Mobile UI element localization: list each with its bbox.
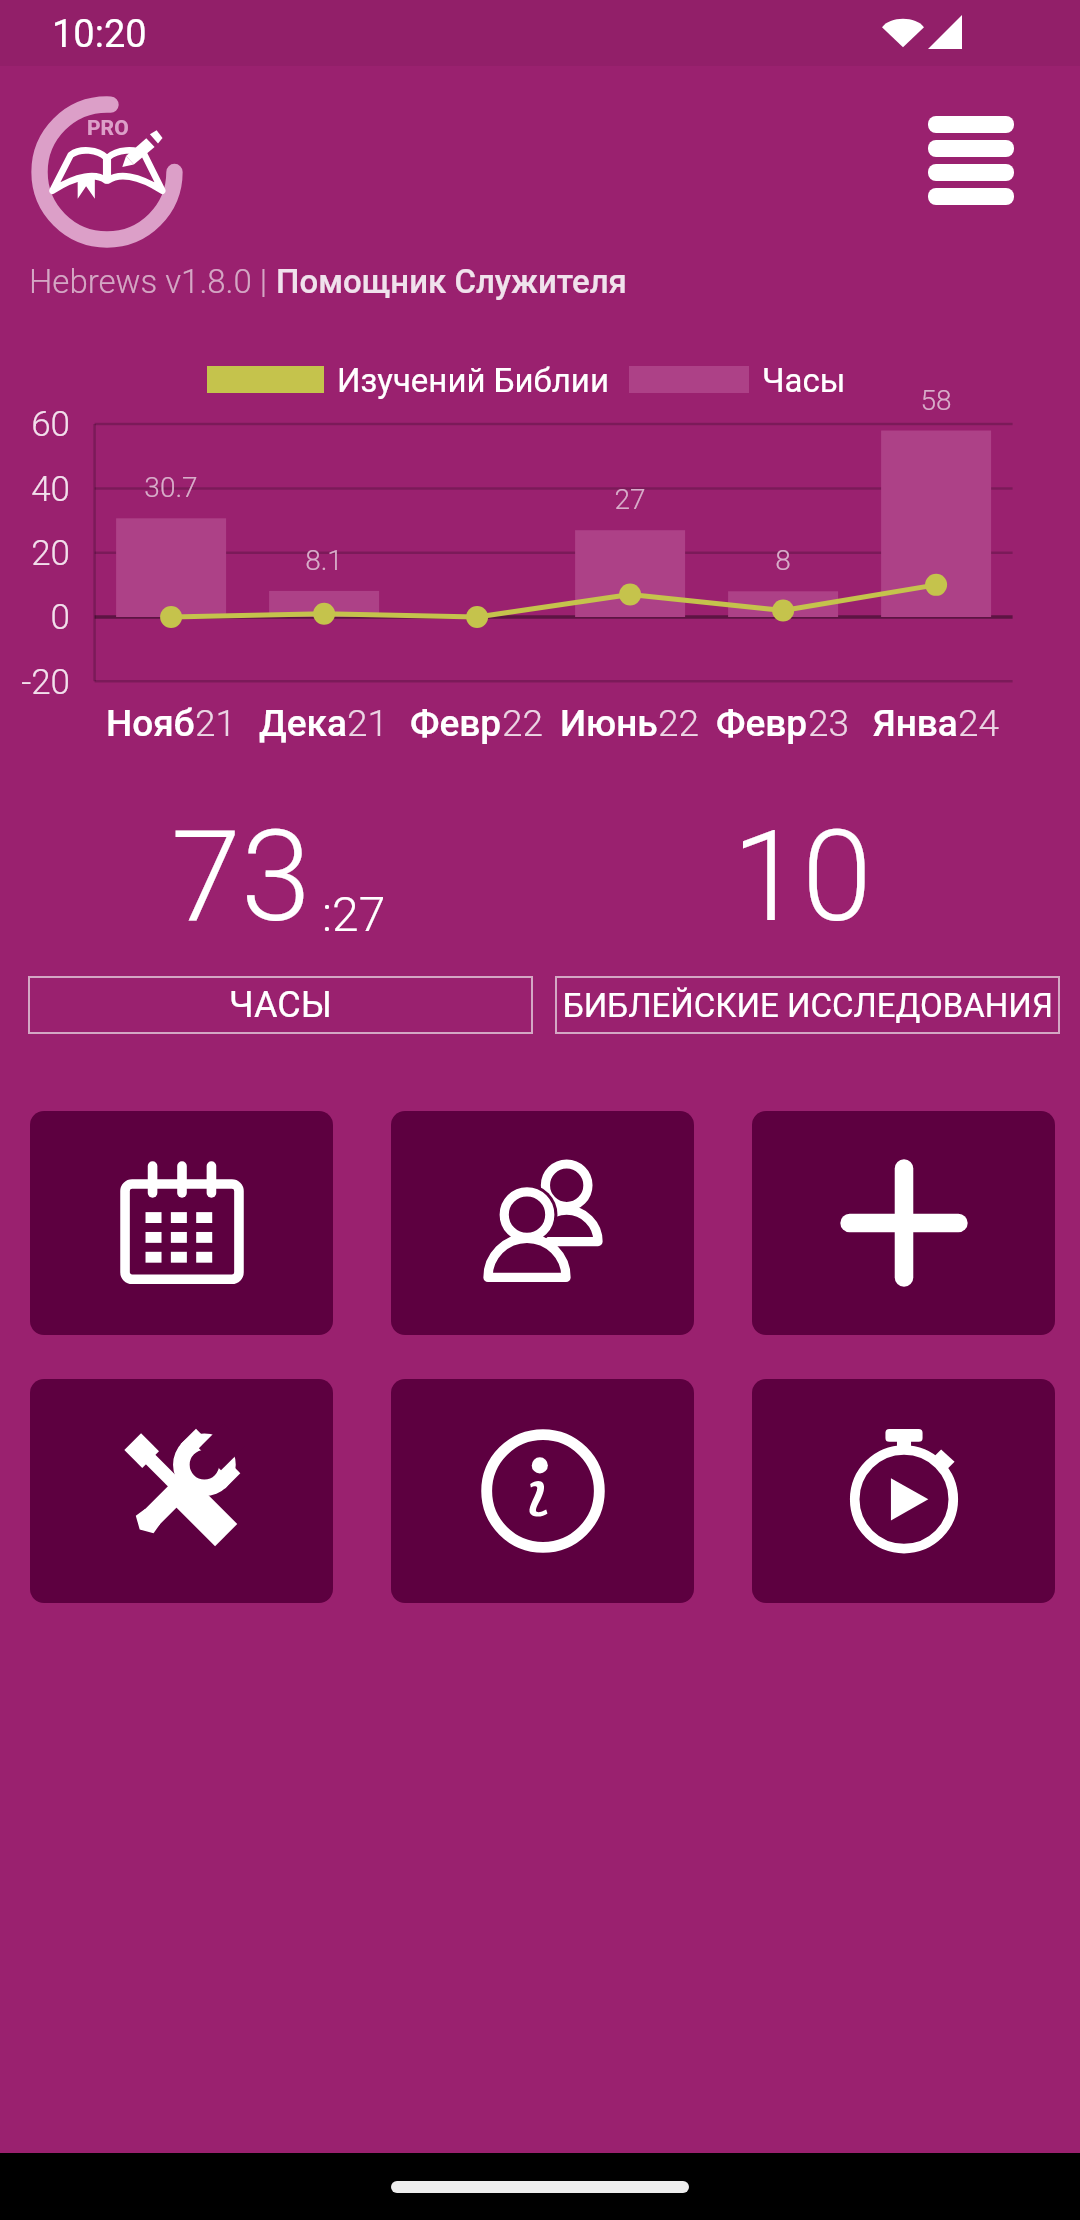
staticText: Нояб [106, 702, 195, 745]
staticText: -20 [21, 662, 70, 703]
staticText: 21 [195, 702, 237, 745]
staticText: 10 [732, 803, 872, 951]
staticText: 8.1 [305, 544, 343, 577]
staticText: ЧАСЫ [229, 984, 332, 1026]
staticText: 23 [808, 702, 850, 745]
button[interactable]: Calendar [30, 1111, 333, 1335]
button[interactable]: Timer [752, 1379, 1055, 1603]
staticText: 22 [658, 702, 700, 745]
staticText: PRO [87, 116, 129, 141]
staticText: Янва [873, 702, 958, 745]
button[interactable]: Menu [912, 98, 1030, 222]
staticText: Часы [762, 361, 846, 400]
button[interactable]: Tools [30, 1379, 333, 1603]
staticText: БИБЛЕЙСКИЕ ИССЛЕДОВАНИЯ [563, 986, 1053, 1025]
button[interactable]: Info [391, 1379, 694, 1603]
staticText: 24 [958, 702, 1000, 745]
staticText: Февр [716, 702, 808, 745]
staticText: Hebrews v1.8.0 | [29, 262, 276, 301]
staticText: Июнь [560, 702, 658, 745]
staticText: 73 [171, 803, 311, 951]
staticText: 40 [31, 469, 70, 510]
staticText: 30.7 [144, 471, 198, 504]
staticText: 58 [920, 384, 952, 417]
staticText: Помощник Служителя [276, 262, 627, 301]
button[interactable]: 10 [555, 795, 1060, 1034]
staticText: 22 [502, 702, 544, 745]
staticText: Дека [259, 702, 347, 745]
staticText: 20 [31, 533, 70, 574]
button[interactable]: Add [752, 1111, 1055, 1335]
staticText: 10:20 [52, 12, 147, 57]
staticText: 21 [347, 702, 389, 745]
staticText: 60 [31, 404, 70, 445]
button[interactable]: 73 [28, 795, 533, 1034]
staticText: 8 [775, 544, 791, 577]
staticText: :27 [322, 886, 386, 942]
button[interactable]: Contacts [391, 1111, 694, 1335]
staticText: Изучений Библии [337, 361, 609, 400]
staticText: 0 [50, 597, 70, 638]
staticText: Февр [410, 702, 502, 745]
staticText: 27 [614, 483, 646, 516]
